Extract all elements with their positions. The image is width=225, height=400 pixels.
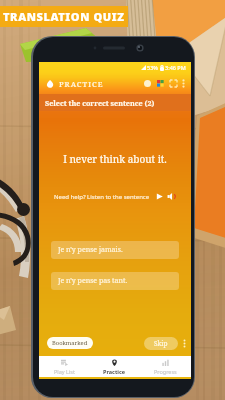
staticText: 3:46 PM	[165, 64, 186, 71]
button[interactable]: Skip	[154, 339, 168, 348]
staticText: Practice	[103, 368, 126, 375]
staticText: Skip	[154, 339, 168, 348]
staticText: 53%	[147, 64, 158, 71]
button[interactable]: Bookmarked	[52, 339, 88, 347]
staticText: I never think about it.	[39, 152, 191, 166]
staticText: Play List	[54, 368, 75, 375]
other: Fullscreen	[170, 80, 177, 87]
staticText: Select the correct sentence (2)	[45, 98, 155, 108]
staticText: Need help? Listen to the sentence	[54, 193, 150, 201]
button[interactable]: Record	[144, 80, 151, 87]
button[interactable]: Je n'y pense jamais.	[51, 241, 179, 259]
button[interactable]: Je n'y pense pas tant.	[51, 272, 179, 290]
button[interactable]: Speak	[167, 192, 176, 201]
button[interactable]: Progress	[140, 356, 191, 377]
other: More options	[182, 79, 185, 88]
staticText: Je n'y pense pas tant.	[58, 276, 128, 286]
button[interactable]: Play List	[39, 356, 89, 377]
other: Language	[157, 80, 164, 87]
staticText: Je n'y pense jamais.	[58, 245, 123, 255]
staticText: Progress	[154, 368, 177, 375]
staticText: Bookmarked	[52, 339, 88, 347]
staticText: PRACTICE	[59, 79, 104, 89]
button[interactable]: TRANSLATION QUIZ	[0, 6, 128, 27]
button[interactable]: Practice	[89, 356, 140, 377]
button[interactable]: Play	[155, 192, 164, 201]
other: Flame	[46, 80, 54, 88]
staticText: TRANSLATION QUIZ	[3, 9, 125, 24]
button[interactable]: More	[183, 339, 186, 348]
